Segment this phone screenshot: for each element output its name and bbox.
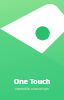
staticText: connect to a secure vpn [0,87,64,91]
staticText: One Touch [0,77,64,87]
